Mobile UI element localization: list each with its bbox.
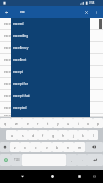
staticText: p [97, 121, 100, 126]
staticText: , [71, 158, 72, 162]
staticText: y [57, 121, 59, 126]
staticText: . [82, 158, 83, 162]
staticText: e [27, 121, 29, 126]
staticText: excepted [13, 106, 27, 110]
staticText: ?123 [14, 158, 20, 162]
staticText: r [37, 121, 39, 126]
button[interactable]: g [48, 130, 58, 140]
button[interactable]: excellency [11, 42, 90, 54]
button[interactable]: c [30, 142, 41, 152]
button[interactable]: i [73, 118, 83, 128]
button[interactable]: u [63, 118, 73, 128]
staticText: o [87, 121, 90, 126]
button[interactable]: Enter [87, 154, 103, 166]
staticText: excess [4, 70, 14, 74]
staticText: j [73, 133, 74, 138]
button[interactable]: y [53, 118, 63, 128]
button[interactable]: Clear search [81, 7, 91, 17]
button[interactable]: More options [91, 7, 101, 17]
button[interactable]: b [52, 142, 63, 152]
staticText: excess [4, 58, 14, 62]
staticText: except that [13, 94, 30, 98]
button[interactable]: e [22, 118, 33, 128]
button[interactable]: q [0, 118, 11, 128]
button[interactable]: Backspace [85, 142, 103, 152]
button[interactable]: l [88, 130, 98, 140]
button[interactable]: Switch keyboard [88, 170, 101, 183]
staticText: w [15, 121, 18, 126]
staticText: excess [4, 114, 14, 117]
staticText: except for [13, 82, 28, 86]
button[interactable]: o [83, 118, 93, 128]
button[interactable]: f [38, 130, 48, 140]
staticText: m [78, 145, 82, 150]
staticText: exc [20, 10, 25, 14]
staticText: h [62, 133, 65, 138]
button[interactable]: n [63, 142, 74, 152]
staticText: excess [4, 106, 14, 110]
button[interactable]: r [33, 118, 43, 128]
button[interactable]: except [11, 66, 90, 78]
button[interactable]: Shift [0, 142, 10, 152]
button[interactable]: z [10, 142, 20, 152]
staticText: excess [4, 34, 14, 38]
button[interactable]: except that [11, 90, 90, 102]
staticText: l [93, 133, 94, 138]
staticText: excess [4, 94, 14, 98]
staticText: excess [4, 82, 14, 86]
button[interactable]: exceed [11, 18, 90, 30]
button[interactable]: exceeding [11, 30, 90, 42]
staticText: b [56, 145, 59, 150]
staticText: f [42, 133, 44, 138]
staticText: a [11, 133, 13, 138]
button[interactable]: ?123 [11, 154, 22, 166]
button[interactable]: k [78, 130, 88, 140]
staticText: u [67, 121, 70, 126]
staticText: k [82, 133, 84, 138]
button[interactable]: s [17, 130, 28, 140]
button[interactable]: m [74, 142, 85, 152]
button[interactable]: excellent [11, 54, 90, 66]
button[interactable]: v [41, 142, 52, 152]
button[interactable]: t [43, 118, 53, 128]
staticText: excess [4, 22, 14, 26]
staticText: excellency [13, 46, 29, 50]
button[interactable]: Home [46, 170, 59, 183]
staticText: s [22, 133, 24, 138]
button[interactable]: j [68, 130, 78, 140]
staticText: c [35, 145, 37, 150]
staticText: x [24, 145, 26, 150]
button[interactable]: excepted [11, 102, 90, 114]
button[interactable]: x [20, 142, 30, 152]
button[interactable]: h [58, 130, 68, 140]
button[interactable]: Hide keyboard [16, 170, 29, 183]
button[interactable]: d [28, 130, 38, 140]
staticText: exceeding [13, 34, 29, 38]
staticText: g [52, 133, 55, 138]
button[interactable]: p [93, 118, 103, 128]
staticText: i [78, 121, 79, 126]
staticText: excellent [13, 58, 27, 62]
staticText: 7:58 [89, 1, 95, 5]
button[interactable]: Back [1, 7, 11, 17]
staticText: exceed [13, 22, 24, 26]
staticText: z [14, 145, 16, 150]
button[interactable]: Change language [0, 154, 11, 166]
staticText: n [67, 145, 70, 150]
staticText: d [32, 133, 35, 138]
button[interactable]: Recent apps [73, 170, 86, 183]
staticText: v [46, 145, 48, 150]
button[interactable]: w [11, 118, 22, 128]
staticText: t [47, 121, 49, 126]
staticText: q [4, 121, 7, 126]
staticText: except [13, 70, 23, 74]
button[interactable]: except for [11, 78, 90, 90]
staticText: excess [4, 46, 14, 50]
button[interactable]: a [6, 130, 17, 140]
